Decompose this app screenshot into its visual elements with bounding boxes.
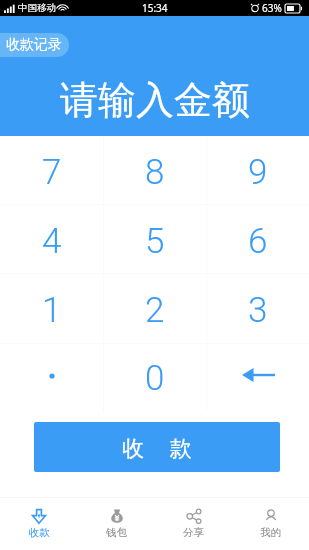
staticText: 2 (145, 290, 165, 331)
staticText: 6 (248, 221, 268, 262)
staticText: 中国移动 (18, 2, 56, 14)
staticText: 63% (262, 1, 282, 15)
staticText: 5 (145, 221, 165, 262)
staticText: 收款记录 (6, 36, 62, 54)
staticText: 4 (42, 221, 62, 262)
button[interactable]: 8 (104, 136, 206, 204)
staticText: 15:34 (142, 1, 168, 15)
staticText: 收款 (29, 526, 50, 539)
button[interactable]: 收 款 (34, 422, 280, 472)
staticText: 我的 (260, 526, 281, 539)
staticText: 7 (42, 152, 62, 193)
staticText: 8 (145, 152, 165, 193)
staticText: 9 (248, 152, 268, 193)
button[interactable]: 5 (104, 205, 206, 273)
button[interactable] (207, 344, 309, 412)
button[interactable]: 2 (104, 274, 206, 343)
staticText: 请输入金额 (60, 76, 250, 124)
button[interactable]: 分享 (155, 498, 232, 550)
button[interactable]: 7 (0, 136, 103, 204)
button[interactable]: 钱包 (78, 498, 155, 550)
button[interactable] (0, 344, 103, 412)
staticText: 收 款 (122, 432, 202, 462)
staticText: 分享 (183, 526, 204, 539)
staticText: 1 (42, 290, 62, 331)
button[interactable]: 9 (207, 136, 309, 204)
button[interactable]: 收款 (0, 498, 78, 550)
button[interactable]: 4 (0, 205, 103, 273)
button[interactable]: 6 (207, 205, 309, 273)
staticText: 0 (145, 358, 165, 399)
staticText: 钱包 (106, 526, 127, 539)
button[interactable]: 1 (0, 274, 103, 343)
button[interactable]: 3 (207, 274, 309, 343)
button[interactable]: 我的 (232, 498, 309, 550)
button[interactable]: 收款记录 (0, 33, 69, 57)
button[interactable]: 0 (104, 344, 206, 412)
staticText: 3 (248, 290, 268, 331)
